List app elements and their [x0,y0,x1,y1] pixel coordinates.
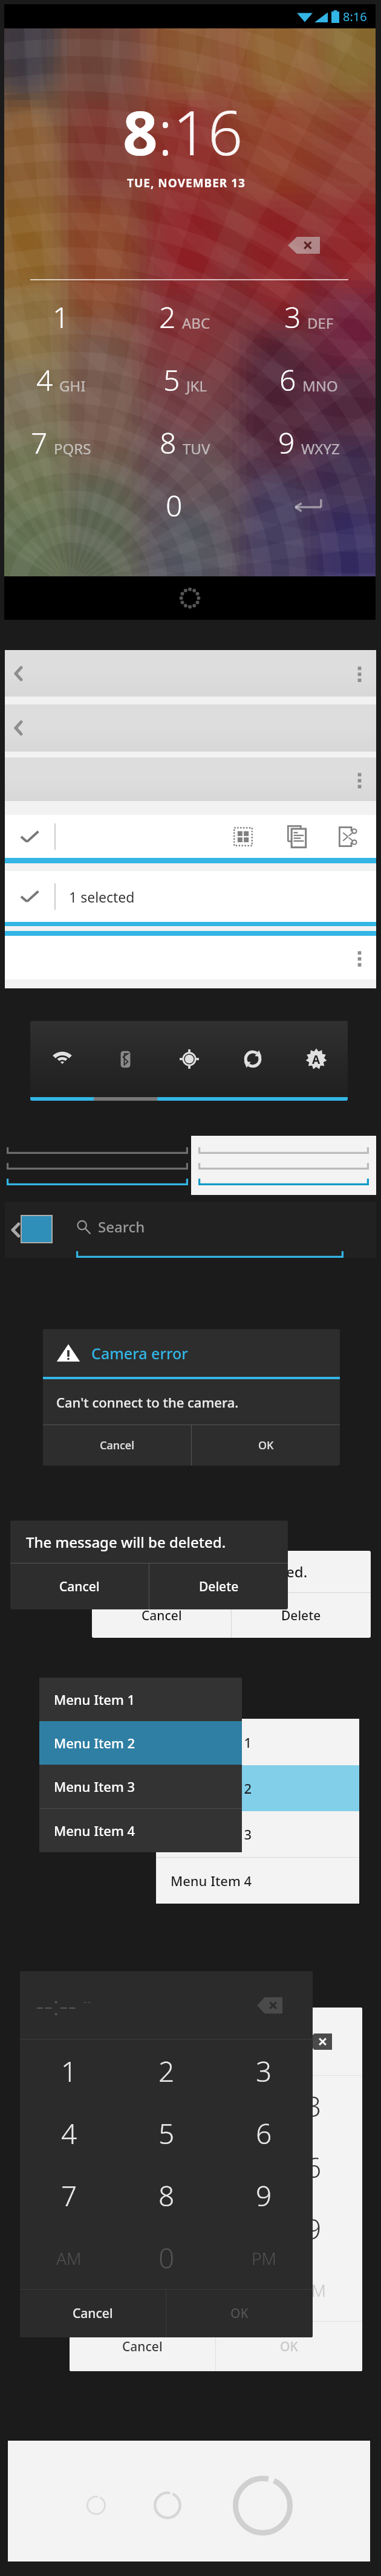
button[interactable]: Backspace [288,237,320,254]
button[interactable]: Menu Item 1 [39,1678,242,1721]
button[interactable]: Cancel [92,1593,231,1638]
button[interactable]: Enter [252,474,376,536]
button[interactable]: PM [265,2259,362,2321]
button[interactable]: AM [70,2259,168,2321]
button[interactable]: Back [7,1202,24,1258]
button[interactable]: 7 [4,411,128,474]
button[interactable]: 0 [118,2227,215,2289]
button[interactable] [198,1155,369,1170]
button[interactable]: Search [76,1202,344,1258]
staticText: 0 [158,2239,175,2277]
button[interactable]: 1 [20,2040,118,2102]
staticText: Menu Item 4 [54,1821,135,1840]
staticText: PM [301,2279,326,2302]
button[interactable]: 5 [128,348,252,411]
staticText: : [158,90,173,173]
button[interactable]: Backspace [307,2033,332,2050]
button[interactable]: Menu Item 4 [39,1809,242,1852]
button[interactable]: Done [5,815,54,858]
button[interactable]: Cancel [10,1563,149,1609]
button[interactable]: 5 [168,2137,265,2198]
button[interactable]: 0 [128,474,252,536]
staticText: -- [132,2028,142,2046]
button[interactable]: 4 [4,348,128,411]
button[interactable]: 6 [265,2137,362,2198]
button[interactable]: PM [215,2227,313,2289]
button[interactable]: Menu Item 4 [156,1858,359,1904]
button[interactable]: Copy [270,815,323,858]
button[interactable]: 2 [168,2076,265,2137]
button[interactable]: Menu Item 1 [156,1719,359,1765]
button[interactable]: More options [342,936,376,979]
button[interactable]: Auto brightness [284,1021,348,1101]
button[interactable]: Delete [149,1563,288,1609]
button[interactable]: Done [5,871,54,922]
button[interactable]: 2 [128,285,252,348]
button[interactable] [198,1171,369,1185]
button[interactable]: App icon [22,1216,51,1242]
button[interactable]: Cut [323,815,376,858]
button[interactable]: OK [192,1425,340,1466]
button[interactable] [198,1139,369,1154]
button[interactable]: Menu Item 3 [39,1765,242,1808]
staticText: Can't connect to the camera. [56,1393,239,1411]
button[interactable]: 2 [118,2040,215,2102]
button[interactable]: Wi-Fi [30,1021,94,1101]
staticText: DEF [307,313,334,333]
staticText: Menu Item 4 [171,1872,252,1890]
button[interactable]: OK [166,2290,313,2337]
button[interactable]: Back [5,704,31,752]
button[interactable]: 1 [70,2076,168,2137]
button[interactable]: 3 [265,2076,362,2137]
button[interactable]: 6 [252,348,376,411]
staticText: 16 [173,90,243,173]
button[interactable]: Select all [217,815,270,858]
button[interactable]: Back [5,650,31,697]
button[interactable] [7,1155,188,1170]
button[interactable]: 8 [118,2165,215,2227]
button[interactable]: Menu Item 2 [39,1721,242,1765]
button[interactable]: Cancel [43,1425,191,1466]
button[interactable]: 7 [20,2165,118,2227]
button[interactable]: Bluetooth [94,1021,157,1101]
button[interactable]: OK [216,2322,362,2371]
button[interactable]: 4 [20,2102,118,2165]
button[interactable]: Cancel [20,2290,166,2337]
staticText: Menu Item 2 [54,1734,135,1752]
button[interactable]: Delete [232,1593,371,1638]
staticText: TUV [183,439,210,459]
button[interactable]: Menu Item 2 [156,1765,359,1811]
button[interactable]: 9 [252,411,376,474]
button[interactable]: 5 [118,2102,215,2165]
button[interactable]: Backspace [257,1997,282,2014]
button[interactable]: Sync [221,1021,284,1101]
button[interactable]: Cancel [70,2322,215,2371]
button[interactable]: AM [20,2227,118,2289]
staticText: Search [98,1217,145,1237]
button[interactable]: More options [342,650,376,697]
staticText: OK [230,2305,249,2322]
staticText: Cancel [73,2305,113,2322]
staticText: 8 [123,90,158,173]
button[interactable]: 8 [168,2198,265,2259]
button[interactable]: 9 [215,2165,313,2227]
staticText: GHI [59,376,86,396]
button[interactable]: 9 [265,2198,362,2259]
button[interactable] [7,1139,188,1154]
button[interactable]: Menu Item 3 [156,1811,359,1857]
button[interactable]: 7 [70,2198,168,2259]
staticText: 1 [53,297,70,336]
button[interactable]: 4 [70,2137,168,2198]
button[interactable]: 3 [252,285,376,348]
button[interactable]: 1 [4,285,128,348]
button[interactable]: 0 [168,2259,265,2321]
button[interactable]: 3 [215,2040,313,2102]
button[interactable]: More options [342,758,376,801]
button[interactable]: 8 [128,411,252,474]
button[interactable] [7,1171,188,1185]
button[interactable]: Location [157,1021,221,1101]
button[interactable]: 6 [215,2102,313,2165]
